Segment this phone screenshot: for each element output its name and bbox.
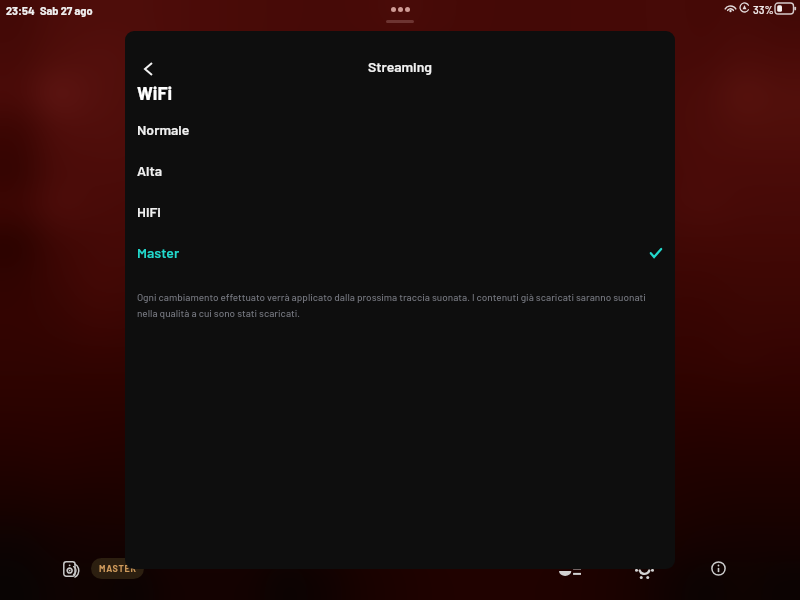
staticText: Normale <box>137 121 190 138</box>
button[interactable]: MASTER <box>91 558 144 579</box>
staticText: Ogni cambiamento effettuato verrà applic… <box>137 291 655 319</box>
button[interactable]: Alta <box>125 150 675 191</box>
button[interactable]: Master <box>125 232 675 273</box>
button[interactable]: Cast to device <box>58 556 84 582</box>
staticText: 23:54 <box>6 4 35 17</box>
button[interactable]: Back <box>135 56 161 82</box>
staticText: 33% <box>753 3 774 16</box>
button[interactable]: HiFi <box>125 191 675 232</box>
button[interactable]: Queue <box>557 558 583 584</box>
button[interactable]: Info <box>705 555 731 581</box>
staticText: MASTER <box>99 563 137 574</box>
staticText: Sab 27 ago <box>40 4 93 17</box>
button[interactable]: Normale <box>125 109 675 150</box>
staticText: Master <box>137 244 180 261</box>
button[interactable]: Sound settings <box>631 559 657 585</box>
staticText: Streaming <box>125 58 675 75</box>
staticText: WiFi <box>137 82 173 104</box>
staticText: HiFi <box>137 203 161 220</box>
staticText: Alta <box>137 162 162 179</box>
